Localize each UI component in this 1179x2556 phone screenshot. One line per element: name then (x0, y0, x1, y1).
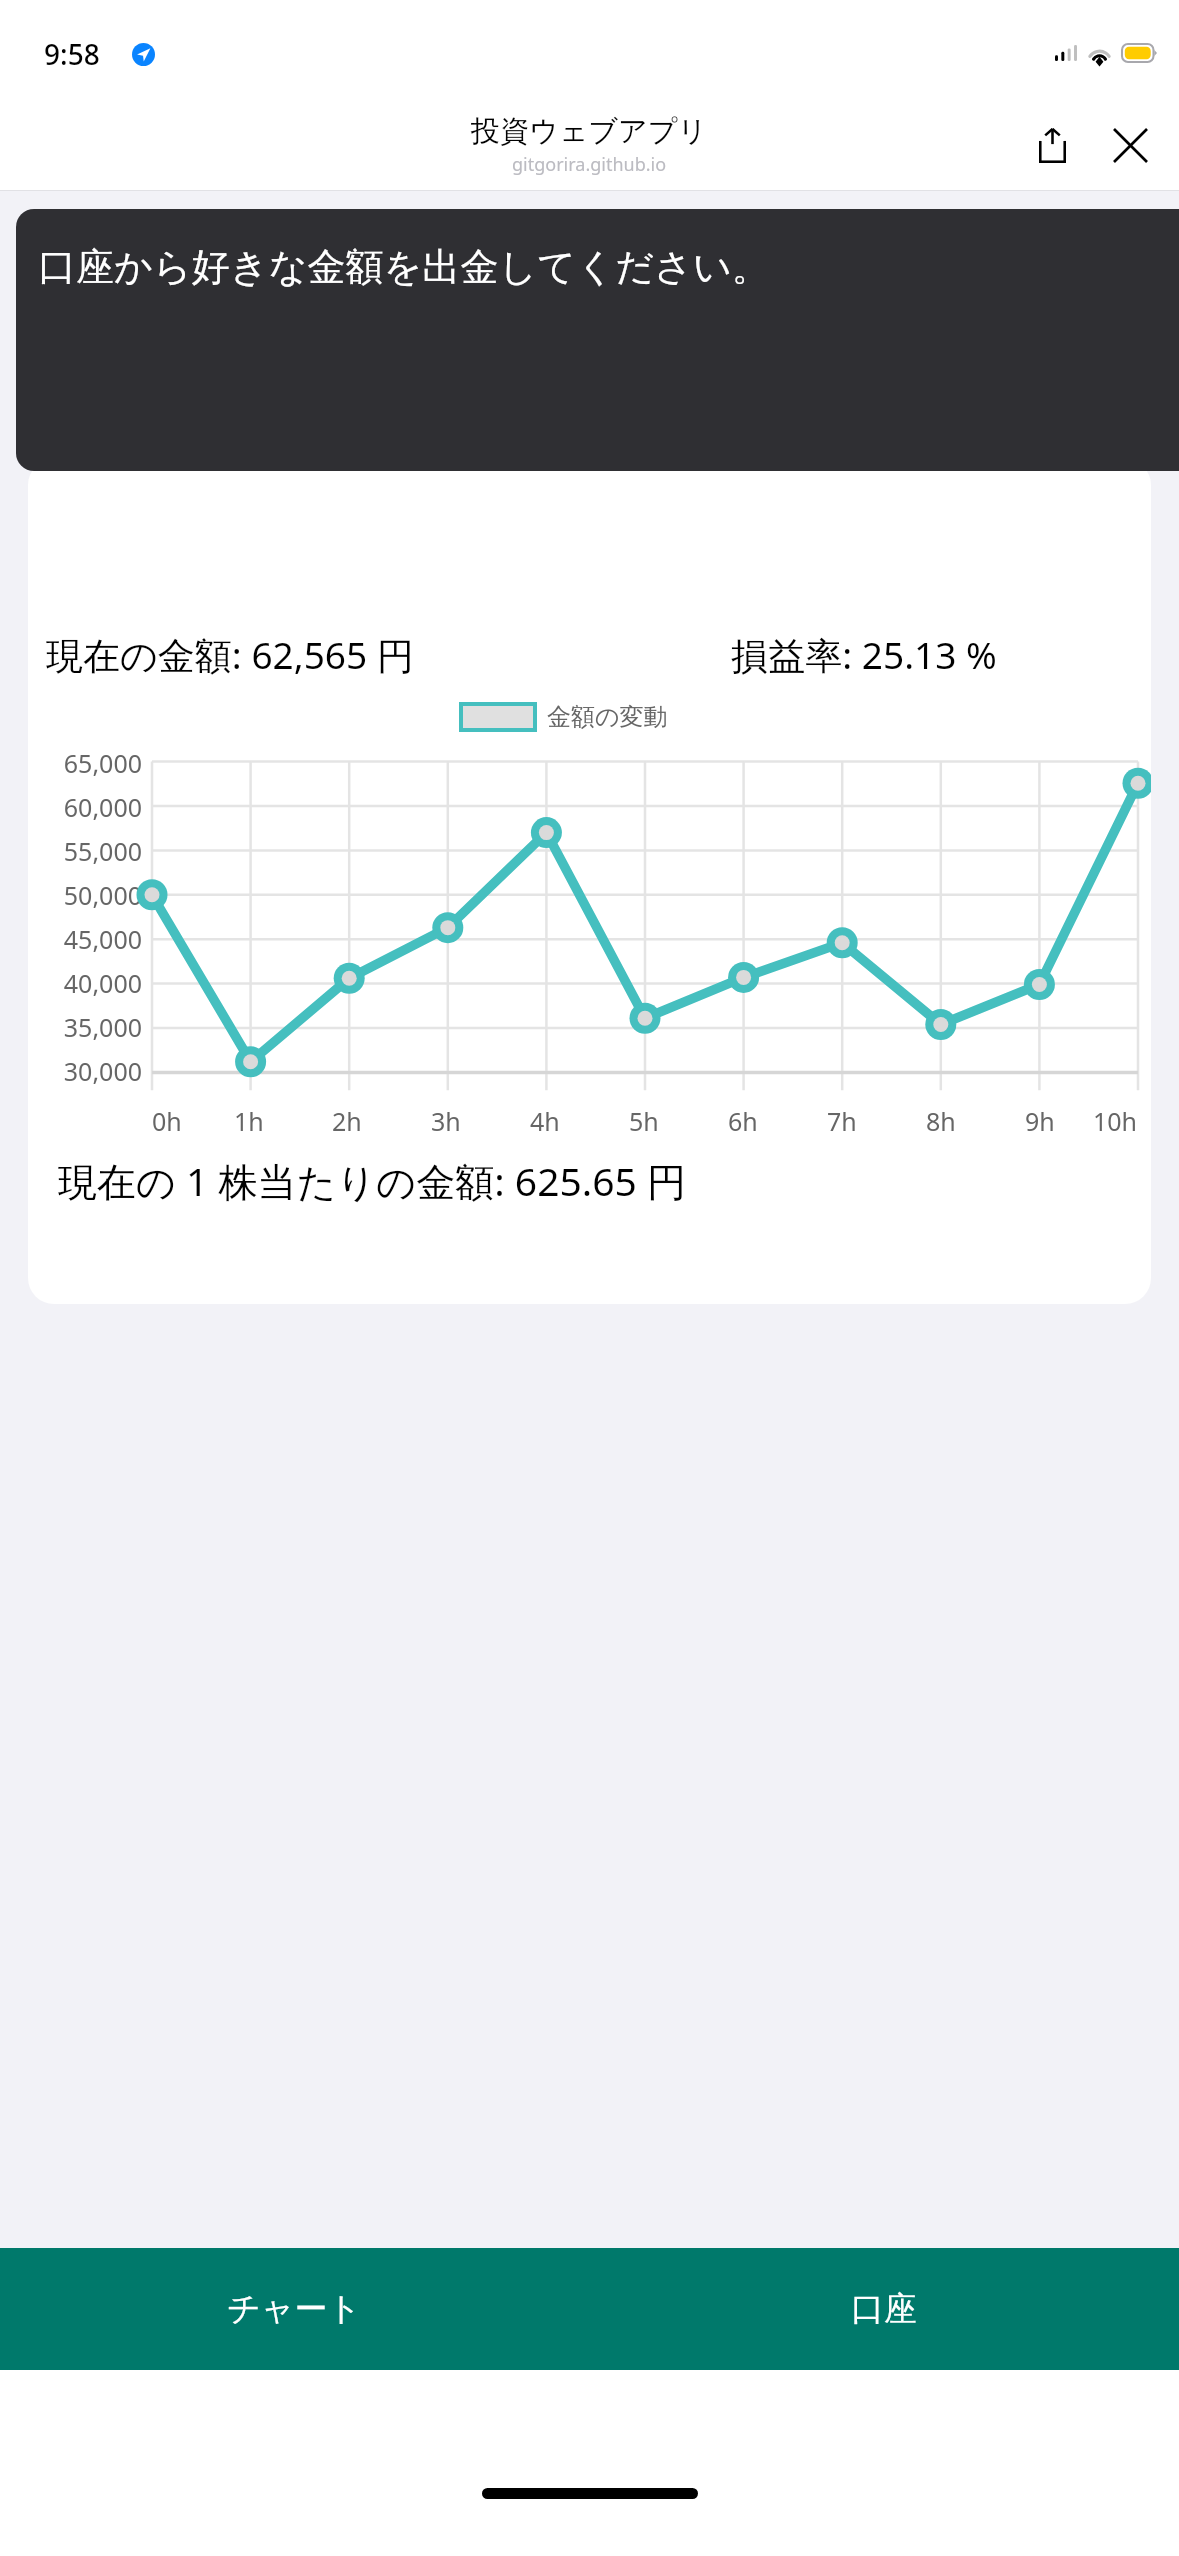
staticText: 45,000 (28, 922, 142, 956)
staticText: 9h (1025, 1104, 1055, 1138)
button[interactable]: 口座 (589, 2248, 1179, 2370)
staticText: 金額の変動 (547, 702, 668, 732)
staticText: 3h (431, 1104, 461, 1138)
staticText: 60,000 (28, 790, 142, 824)
staticText: 7h (827, 1104, 857, 1138)
button[interactable]: Close (1099, 114, 1161, 176)
button[interactable]: チャート (0, 2248, 589, 2370)
staticText: 30,000 (28, 1054, 142, 1088)
staticText: 50,000 (28, 878, 142, 912)
staticText: 口座から好きな金額を出金してください。 (38, 243, 770, 291)
staticText: 1h (234, 1104, 264, 1138)
staticText: 現在の 1 株当たりの金額: 625.65 円 (58, 1154, 686, 1207)
staticText: チャート (14, 329, 177, 379)
staticText: 55,000 (28, 834, 142, 868)
staticText: 9:58 (44, 35, 100, 73)
staticText: チャート (227, 2288, 362, 2330)
staticText: 投資ウェブアプリ (471, 113, 708, 150)
staticText: 現在の金額: 62,565 円 (46, 629, 414, 680)
staticText: 8h (926, 1104, 956, 1138)
staticText: 10h (1093, 1104, 1138, 1138)
staticText: 2h (332, 1104, 362, 1138)
staticText: 4h (530, 1104, 560, 1138)
staticText: 6h (728, 1104, 758, 1138)
staticText: 5h (629, 1104, 659, 1138)
staticText: 損益率: 25.13 % (589, 629, 1139, 680)
staticText: gitgorira.github.io (512, 152, 667, 177)
staticText: 35,000 (28, 1010, 142, 1044)
staticText: 65,000 (28, 746, 142, 780)
staticText: 40,000 (28, 966, 142, 1000)
staticText: 口座 (851, 2288, 917, 2330)
button[interactable]: Share (1021, 114, 1083, 176)
staticText: 0h (152, 1104, 182, 1138)
